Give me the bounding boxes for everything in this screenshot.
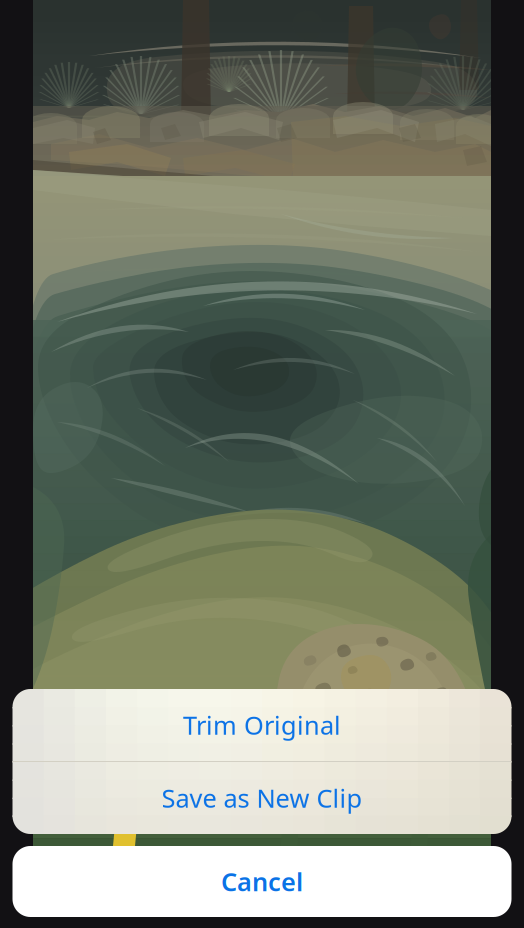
- staticText: Save as New Clip: [161, 781, 362, 815]
- button[interactable]: Save as New Clip: [12, 762, 511, 834]
- button[interactable]: Trim Original: [12, 689, 511, 761]
- staticText: Cancel: [221, 865, 303, 898]
- button[interactable]: Cancel: [12, 846, 511, 917]
- staticText: Trim Original: [183, 708, 341, 742]
